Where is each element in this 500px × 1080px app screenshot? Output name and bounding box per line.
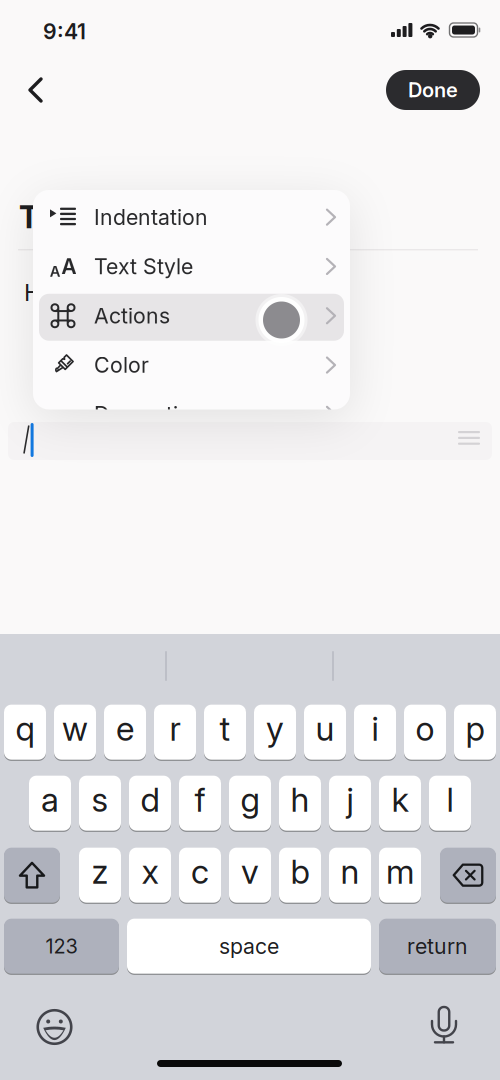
staticText: w	[62, 709, 88, 748]
button[interactable]: Indentation	[33, 192, 350, 242]
staticText: H	[24, 278, 42, 306]
button[interactable]: z	[79, 847, 121, 903]
staticText: p	[465, 709, 484, 748]
button[interactable]: Decorations	[33, 390, 350, 439]
staticText: d	[140, 780, 159, 819]
button[interactable]: a	[29, 775, 71, 831]
staticText: y	[266, 709, 284, 748]
staticText: T	[19, 199, 39, 235]
button[interactable]: p	[454, 704, 496, 760]
staticText: t	[219, 709, 230, 748]
button[interactable]: 123	[4, 918, 119, 974]
button[interactable]: Drag handle	[452, 425, 486, 451]
button[interactable]: space	[127, 918, 371, 974]
button[interactable]: c	[179, 847, 221, 903]
button[interactable]: q	[4, 704, 46, 760]
button[interactable]: l	[429, 775, 471, 831]
button[interactable]: t	[204, 704, 246, 760]
button[interactable]: Actions	[33, 291, 350, 340]
staticText: s	[91, 780, 108, 819]
button[interactable]: Shift	[4, 847, 60, 903]
button[interactable]: Back	[18, 67, 53, 113]
staticText: n	[340, 852, 359, 891]
staticText: Actions	[94, 303, 170, 328]
button[interactable]: v	[229, 847, 271, 903]
button[interactable]: x	[129, 847, 171, 903]
button[interactable]: k	[379, 775, 421, 831]
staticText: k	[391, 780, 408, 819]
button[interactable]: e	[104, 704, 146, 760]
staticText: 123	[45, 934, 77, 958]
staticText: space	[219, 934, 279, 959]
staticText: j	[346, 780, 353, 819]
button[interactable]: j	[329, 775, 371, 831]
button[interactable]: Done	[386, 70, 480, 110]
staticText: return	[407, 934, 468, 959]
button[interactable]: return	[379, 918, 496, 974]
button[interactable]: y	[254, 704, 296, 760]
staticText: v	[241, 852, 259, 891]
button[interactable]: f	[179, 775, 221, 831]
staticText: c	[191, 852, 209, 891]
staticText: u	[315, 709, 334, 748]
staticText: A	[61, 254, 76, 279]
staticText: g	[240, 780, 259, 819]
staticText: o	[415, 709, 434, 748]
button[interactable]: Emoji	[30, 1003, 78, 1051]
button[interactable]: r	[154, 704, 196, 760]
staticText: 9:41	[43, 19, 86, 44]
button[interactable]: s	[79, 775, 121, 831]
staticText: Text Style	[94, 254, 193, 279]
staticText: A	[50, 263, 61, 280]
staticText: Decorations	[94, 402, 215, 427]
button[interactable]: w	[54, 704, 96, 760]
button[interactable]: g	[229, 775, 271, 831]
button[interactable]: Delete	[440, 847, 496, 903]
staticText: f	[194, 780, 205, 819]
staticText: i	[371, 709, 378, 748]
staticText: Done	[408, 78, 458, 102]
button[interactable]: m	[379, 847, 421, 903]
staticText: q	[15, 709, 34, 748]
button[interactable]: d	[129, 775, 171, 831]
button[interactable]: Dictation	[426, 1001, 462, 1051]
staticText: Indentation	[94, 205, 208, 230]
button[interactable]: u	[304, 704, 346, 760]
staticText: e	[116, 709, 134, 748]
staticText: b	[290, 852, 309, 891]
staticText: r	[169, 709, 180, 748]
staticText: x	[141, 852, 158, 891]
button[interactable]: A	[33, 242, 350, 291]
staticText: h	[290, 780, 309, 819]
button[interactable]: o	[404, 704, 446, 760]
button[interactable]: i	[354, 704, 396, 760]
staticText: z	[91, 852, 108, 891]
button[interactable]: Color	[33, 340, 350, 390]
button[interactable]: b	[279, 847, 321, 903]
staticText: m	[386, 852, 414, 891]
staticText: Color	[94, 352, 149, 378]
staticText: a	[41, 780, 59, 819]
button[interactable]: h	[279, 775, 321, 831]
button[interactable]: n	[329, 847, 371, 903]
staticText: l	[446, 780, 453, 819]
